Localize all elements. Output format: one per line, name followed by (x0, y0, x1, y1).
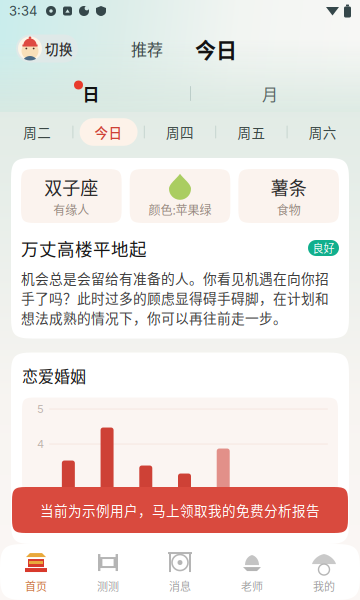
button[interactable]: 颜色:苹果绿 (130, 169, 230, 223)
button[interactable]: 今日 (195, 32, 237, 64)
staticText: 测测 (97, 578, 119, 594)
button[interactable]: 推荐 (131, 33, 163, 63)
button[interactable]: 双子座 (21, 169, 122, 223)
staticText: 老师 (241, 578, 263, 594)
button[interactable]: 周五 (216, 118, 287, 146)
staticText: 5 (37, 402, 44, 416)
staticText: 4 (37, 437, 44, 451)
button[interactable]: 当前为示例用户，马上领取我的免费分析报告 (12, 487, 348, 533)
button[interactable]: 周二 (2, 118, 72, 146)
button[interactable]: 老师 (216, 544, 288, 600)
staticText: 今日 (195, 33, 237, 64)
staticText: 3:34 (9, 3, 37, 19)
staticText: 恋爱婚姻 (22, 364, 86, 387)
staticText: 日 (82, 81, 99, 106)
button[interactable]: 消息 (144, 544, 216, 600)
staticText: 首页 (25, 578, 47, 594)
staticText: 周六 (309, 122, 337, 142)
button[interactable]: 首页 (0, 544, 72, 600)
staticText: 万丈高楼平地起 (21, 235, 147, 261)
button[interactable]: 今日 (73, 118, 144, 146)
staticText: 有缘人 (53, 201, 89, 218)
staticText: 今日 (95, 122, 123, 142)
staticText: 消息 (169, 578, 191, 594)
staticText: 月 (262, 82, 278, 105)
staticText: 切换 (45, 39, 73, 58)
button[interactable]: 测测 (72, 544, 144, 600)
staticText: 双子座 (44, 174, 98, 200)
button[interactable]: 周六 (288, 118, 358, 146)
button[interactable]: 月 (253, 78, 287, 108)
staticText: 食物 (277, 201, 301, 218)
staticText: 机会总是会留给有准备的人。你看见机遇在向你招手了吗？此时过多的顾虑显得碍手碍脚，… (21, 268, 329, 327)
staticText: 周二 (23, 122, 51, 142)
button[interactable]: 周四 (145, 118, 215, 146)
button[interactable]: 切换 (16, 34, 78, 62)
staticText: 颜色:苹果绿 (148, 201, 211, 218)
staticText: 周五 (237, 122, 265, 142)
staticText: 周四 (166, 122, 194, 142)
button[interactable]: 我的 (288, 544, 360, 600)
staticText: 我的 (313, 578, 335, 594)
staticText: 当前为示例用户，马上领取我的免费分析报告 (40, 500, 320, 520)
staticText: 推荐 (131, 37, 163, 60)
staticText: 良好 (312, 240, 334, 256)
staticText: 薯条 (271, 174, 307, 200)
button[interactable]: 日 (74, 78, 108, 108)
button[interactable]: 薯条 (238, 169, 339, 223)
